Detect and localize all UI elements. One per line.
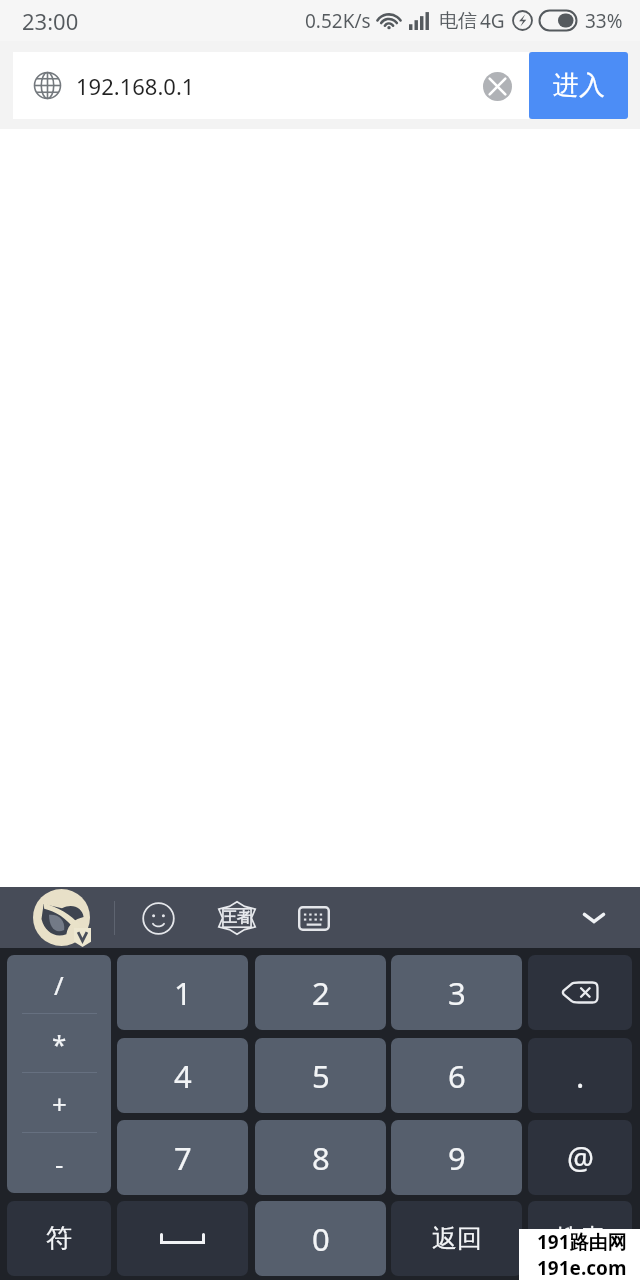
button[interactable]: 192.168.0.1	[13, 52, 529, 119]
button[interactable]: +	[7, 1073, 111, 1133]
button[interactable]: 0	[255, 1201, 386, 1276]
button[interactable]: 8	[255, 1120, 386, 1195]
button[interactable]: Space	[117, 1201, 248, 1276]
button[interactable]: 搜索	[528, 1201, 632, 1276]
staticText: 符	[46, 1222, 72, 1255]
button[interactable]: Keyboard	[289, 893, 339, 943]
staticText: 0.52K/s	[305, 8, 371, 34]
staticText: 王者	[223, 909, 251, 927]
button[interactable]: *	[7, 1014, 111, 1073]
button[interactable]: 6	[391, 1038, 522, 1113]
staticText: 电信	[439, 9, 477, 33]
staticText: 191路由网	[537, 1229, 627, 1255]
staticText: 191e.com	[537, 1255, 627, 1280]
staticText: +	[52, 1086, 67, 1121]
staticText: 0	[312, 1218, 330, 1260]
staticText: @	[567, 1137, 594, 1178]
button[interactable]: 9	[391, 1120, 522, 1195]
staticText: 23:00	[22, 6, 79, 36]
staticText: 5	[312, 1055, 330, 1097]
staticText: .	[576, 1055, 585, 1097]
staticText: 1	[174, 972, 192, 1014]
button[interactable]: /	[7, 955, 111, 1014]
staticText: 8	[312, 1137, 330, 1179]
button[interactable]: 4	[117, 1038, 248, 1113]
button[interactable]: 进入	[529, 52, 628, 119]
staticText: 33%	[585, 8, 623, 34]
staticText: 4	[174, 1055, 192, 1097]
staticText: /	[54, 967, 64, 1002]
staticText: 192.168.0.1	[76, 71, 195, 101]
button[interactable]: Clear	[475, 64, 519, 108]
button[interactable]: 7	[117, 1120, 248, 1195]
button[interactable]: Emoji	[133, 893, 183, 943]
staticText: 9	[448, 1137, 466, 1179]
button[interactable]: 1	[117, 955, 248, 1030]
button[interactable]: 2	[255, 955, 386, 1030]
button[interactable]: 符	[7, 1201, 111, 1276]
button[interactable]: Hide keyboard	[566, 890, 622, 946]
button[interactable]: 5	[255, 1038, 386, 1113]
staticText: 4G	[480, 8, 505, 34]
staticText: 搜索	[555, 1223, 605, 1254]
button[interactable]: 3	[391, 955, 522, 1030]
button[interactable]: Backspace	[528, 955, 632, 1030]
staticText: 7	[174, 1137, 192, 1179]
staticText: 6	[448, 1055, 466, 1097]
button[interactable]: Avatar	[33, 889, 90, 946]
button[interactable]: King badge	[212, 893, 262, 943]
button[interactable]: .	[528, 1038, 632, 1113]
button[interactable]: @	[528, 1120, 632, 1195]
button[interactable]: 返回	[391, 1201, 522, 1276]
staticText: 3	[448, 972, 466, 1014]
button[interactable]: -	[7, 1133, 111, 1193]
staticText: -	[55, 1146, 64, 1181]
staticText: 进入	[553, 69, 605, 102]
staticText: *	[52, 1026, 67, 1061]
staticText: 2	[312, 972, 330, 1014]
staticText: 返回	[432, 1223, 482, 1254]
